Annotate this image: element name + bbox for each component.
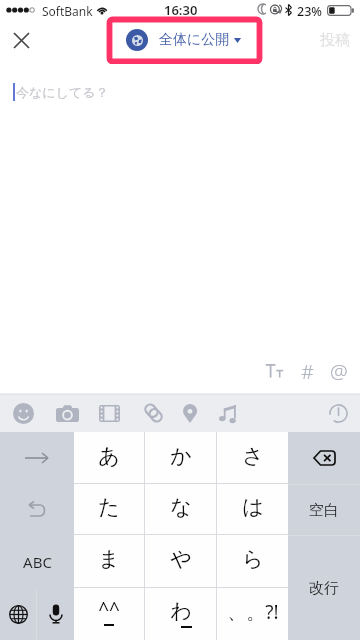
button[interactable]: か [145, 432, 216, 483]
staticText: ABC [23, 552, 52, 572]
button[interactable]: さ [217, 432, 288, 483]
staticText: 、。?! [227, 599, 279, 625]
button[interactable]: ま [74, 535, 144, 587]
button[interactable]: な [145, 484, 216, 534]
button[interactable]: Close [0, 19, 43, 62]
button[interactable]: ^^ [74, 588, 144, 640]
button[interactable]: Text format [258, 355, 290, 387]
button[interactable] [0, 432, 74, 484]
staticText: 空白 [309, 501, 339, 520]
button[interactable]: 改行 [288, 536, 360, 640]
button[interactable] [0, 484, 74, 535]
button[interactable]: 空白 [288, 485, 360, 535]
staticText: た [98, 494, 120, 520]
staticText: 今なにしてる？ [16, 84, 109, 100]
staticText: は [242, 494, 264, 520]
staticText: # [301, 358, 314, 385]
button[interactable]: ら [217, 535, 288, 587]
staticText: 16:30 [164, 1, 198, 19]
button[interactable]: た [74, 484, 144, 534]
button[interactable]: あ [74, 432, 144, 483]
button[interactable]: Video [90, 394, 128, 432]
button[interactable]: Hashtag [291, 355, 323, 387]
button[interactable]: や [145, 535, 216, 587]
button[interactable]: わ [145, 588, 216, 640]
staticText: か [170, 443, 192, 469]
button[interactable]: 投稿 [320, 31, 350, 50]
staticText: 投稿 [320, 31, 350, 50]
button[interactable]: Location [171, 394, 209, 432]
staticText: 改行 [309, 579, 339, 598]
staticText: わ [170, 598, 192, 624]
button[interactable]: Dictation [37, 588, 74, 640]
staticText: SoftBank [42, 3, 93, 19]
staticText: 23% [297, 3, 322, 20]
button[interactable]: Delete [288, 432, 360, 484]
staticText: 全体に公開 [159, 31, 230, 49]
button[interactable]: Mention [323, 355, 355, 387]
staticText: @ [330, 358, 348, 385]
button[interactable]: Link [134, 394, 172, 432]
staticText: さ [242, 443, 264, 469]
staticText: な [170, 494, 192, 520]
staticText: あ [98, 443, 120, 469]
button[interactable]: 、。?! [217, 588, 288, 640]
button[interactable]: Change keyboard [0, 588, 36, 640]
button[interactable]: Camera [48, 394, 86, 432]
staticText: ま [98, 546, 120, 572]
button[interactable]: は [217, 484, 288, 534]
button[interactable]: Recent [319, 394, 357, 432]
button[interactable]: Emoji [4, 394, 42, 432]
staticText: や [170, 546, 192, 572]
button[interactable]: Music [208, 394, 246, 432]
button[interactable]: 全体に公開 [126, 29, 241, 51]
staticText: ^^ [98, 596, 120, 622]
staticText: ら [242, 546, 264, 572]
button[interactable]: ABC [0, 535, 74, 588]
